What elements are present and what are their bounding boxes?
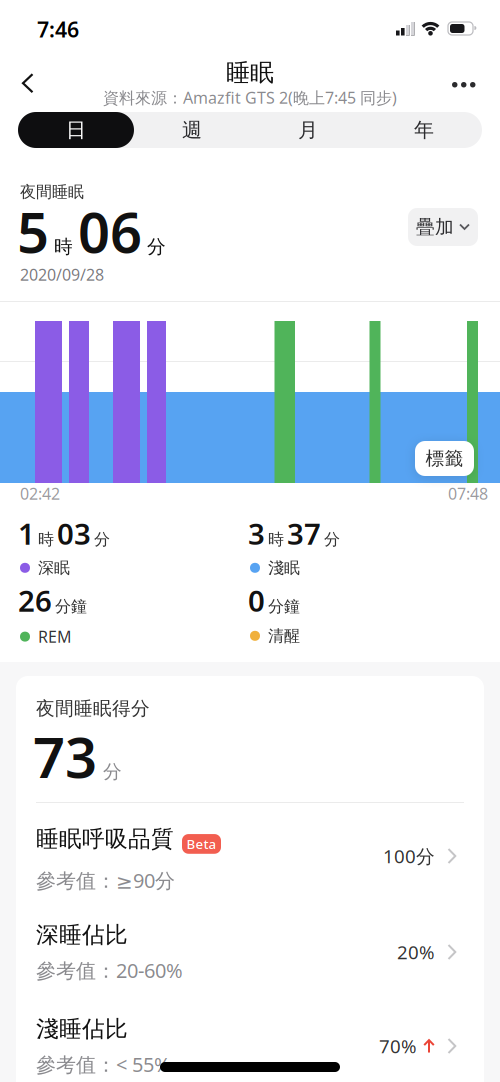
- staticText: 07:48: [448, 483, 488, 504]
- staticText: 標籤: [425, 447, 463, 470]
- button[interactable]: [444, 74, 483, 95]
- staticText: REM: [38, 626, 72, 647]
- staticText: 06: [78, 194, 142, 268]
- staticText: 深睡佔比: [36, 921, 128, 949]
- staticText: 0: [248, 581, 265, 620]
- staticText: 分: [103, 760, 122, 783]
- staticText: 參考值：≥90分: [36, 867, 175, 894]
- staticText: 淺眠: [268, 558, 300, 578]
- staticText: 分鐘: [55, 597, 87, 616]
- staticText: 1: [18, 514, 35, 553]
- staticText: 睡眠呼吸品質: [36, 825, 174, 853]
- button[interactable]: 日: [18, 112, 134, 148]
- staticText: 70%: [379, 1034, 417, 1058]
- staticText: 月: [298, 118, 318, 142]
- staticText: 資料來源：Amazfit GTS 2(晚上7:45 同步): [103, 87, 397, 108]
- staticText: 20%: [397, 940, 435, 964]
- staticText: 2020/09/28: [20, 264, 104, 285]
- button[interactable]: 標籤: [415, 441, 474, 476]
- button[interactable]: 週: [134, 112, 250, 148]
- staticText: 時: [38, 530, 54, 549]
- button[interactable]: 睡眠呼吸品質: [16, 825, 484, 887]
- staticText: 分: [94, 530, 110, 549]
- staticText: 日: [66, 118, 86, 142]
- staticText: 時: [54, 235, 73, 258]
- staticText: 73: [33, 719, 97, 793]
- staticText: 26: [18, 581, 52, 620]
- staticText: 02:42: [20, 483, 60, 504]
- staticText: 參考值：20-60%: [36, 957, 183, 984]
- staticText: 分: [147, 235, 166, 258]
- staticText: 分: [324, 530, 340, 549]
- staticText: 夜間睡眠得分: [36, 697, 150, 720]
- staticText: 37: [287, 514, 321, 553]
- staticText: 夜間睡眠: [20, 182, 84, 202]
- staticText: 淺睡佔比: [36, 1015, 128, 1043]
- staticText: 疊加: [416, 215, 454, 238]
- staticText: 3: [248, 514, 265, 553]
- staticText: 深眠: [38, 558, 70, 578]
- staticText: 參考值：< 55%: [36, 1051, 171, 1078]
- staticText: 5: [17, 194, 49, 268]
- button[interactable]: 深睡佔比: [16, 921, 484, 983]
- button[interactable]: 淺睡佔比: [16, 1015, 484, 1077]
- staticText: 03: [57, 514, 91, 553]
- staticText: 年: [414, 118, 434, 142]
- button[interactable]: [11, 63, 44, 103]
- staticText: 睡眠: [226, 58, 274, 87]
- button[interactable]: 月: [250, 112, 366, 148]
- staticText: 清醒: [268, 626, 300, 646]
- staticText: Beta: [186, 835, 216, 853]
- staticText: 100分: [383, 844, 435, 868]
- staticText: 時: [268, 530, 284, 549]
- staticText: 週: [182, 118, 202, 142]
- button[interactable]: 疊加: [408, 208, 478, 246]
- staticText: 分鐘: [268, 597, 300, 616]
- button[interactable]: 年: [366, 112, 482, 148]
- staticText: 7:46: [37, 15, 79, 43]
